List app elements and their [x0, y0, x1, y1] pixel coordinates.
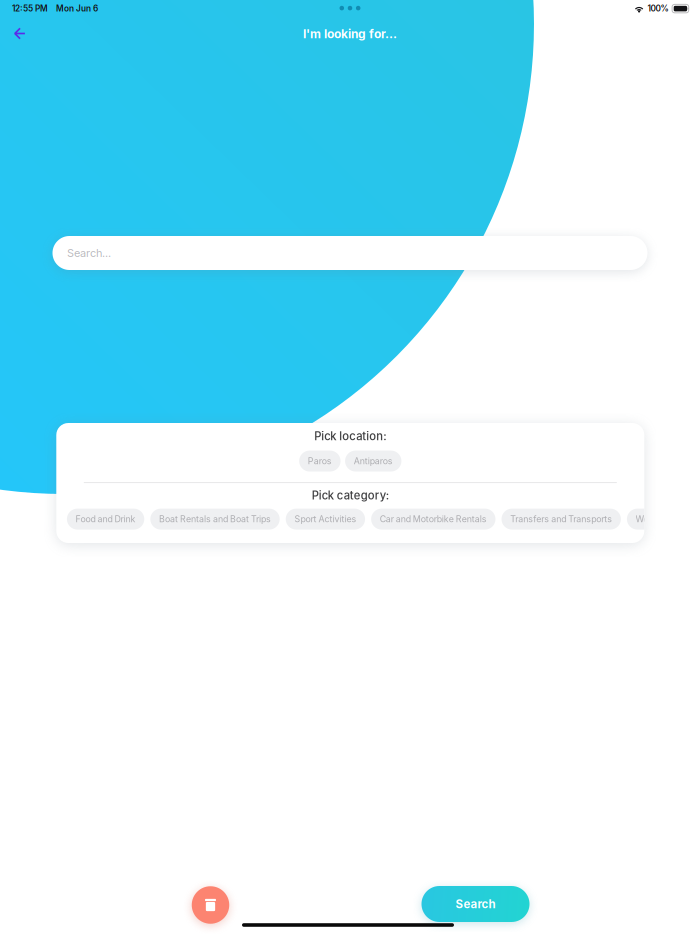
- staticText: Sport Activities: [294, 514, 356, 524]
- staticText: Transfers and Transports: [510, 514, 612, 524]
- staticText: Car and Motorbike Rentals: [380, 514, 487, 524]
- button[interactable]: Boat Rentals and Boat Trips: [150, 509, 280, 530]
- button[interactable]: Clear search: [192, 886, 229, 924]
- staticText: Mon Jun 6: [56, 4, 98, 14]
- staticText: Wellness: [636, 514, 673, 524]
- button[interactable]: Wellness: [627, 509, 681, 530]
- button[interactable]: Sport Activities: [286, 509, 365, 530]
- staticText: Pick category:: [312, 489, 389, 502]
- button[interactable]: Car and Motorbike Rentals: [371, 509, 495, 530]
- staticText: Antiparos: [354, 456, 393, 466]
- staticText: 12:55 PM: [12, 4, 48, 14]
- button[interactable]: Food and Drink: [67, 509, 144, 530]
- button[interactable]: Paros: [299, 451, 340, 472]
- staticText: 100%: [647, 4, 668, 14]
- staticText: Paros: [308, 456, 332, 466]
- staticText: Boat Rentals and Boat Trips: [159, 514, 271, 524]
- button[interactable]: Back: [4, 19, 34, 49]
- button[interactable]: Antiparos: [345, 451, 401, 472]
- staticText: Search: [455, 897, 495, 911]
- staticText: I'm looking for...: [303, 27, 397, 41]
- button[interactable]: Search: [421, 886, 529, 922]
- staticText: Search...: [67, 246, 111, 260]
- staticText: Pick location:: [314, 429, 386, 443]
- staticText: Food and Drink: [76, 514, 136, 524]
- button[interactable]: Search...: [52, 236, 647, 270]
- button[interactable]: Transfers and Transports: [501, 509, 621, 530]
